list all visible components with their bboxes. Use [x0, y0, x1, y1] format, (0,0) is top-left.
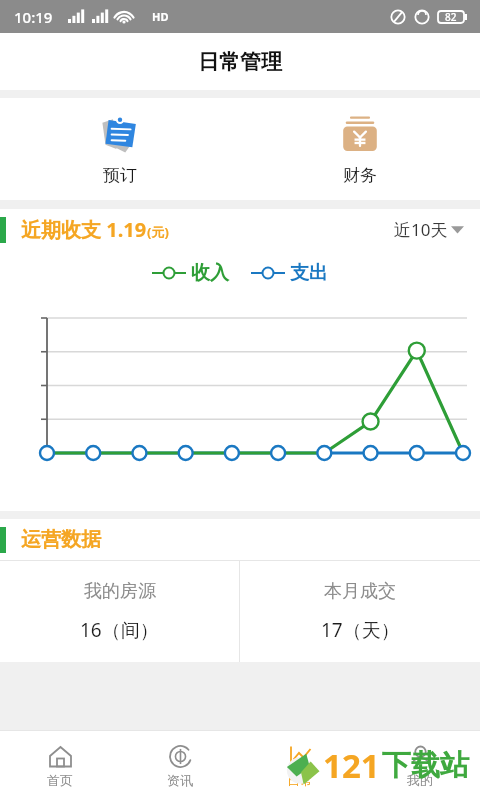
button[interactable]: 我的 [360, 730, 480, 800]
staticText: 日常管理 [198, 49, 282, 75]
staticText: (元) [147, 223, 169, 241]
button[interactable]: 预订 [0, 98, 240, 200]
button[interactable]: 收入 [152, 261, 229, 285]
staticText: 财务 [343, 165, 377, 186]
button[interactable]: 本月成交 [240, 561, 480, 662]
staticText: 收入 [191, 261, 229, 285]
other: 资讯 [168, 744, 193, 769]
staticText: 近期收支 1.19 [21, 216, 147, 243]
staticText: 我的 [407, 772, 433, 788]
staticText: 支出 [290, 261, 328, 285]
other: 我的 [408, 744, 433, 769]
button[interactable]: 资讯 [120, 730, 240, 800]
staticText: 82 [445, 10, 457, 24]
staticText: 近10天 [394, 218, 448, 241]
staticText: 运营数据 [21, 527, 101, 552]
staticText: 10:19 [14, 7, 53, 27]
staticText: 首页 [47, 772, 73, 788]
staticText: 日常 [287, 772, 313, 788]
staticText: 17（天） [321, 617, 400, 643]
staticText: 16（间） [80, 617, 159, 643]
staticText: 121 [323, 743, 380, 788]
button[interactable]: 财务 [240, 98, 480, 200]
staticText: HD [152, 9, 169, 24]
button[interactable]: 首页 [0, 730, 120, 800]
button[interactable]: 支出 [251, 261, 328, 285]
staticText: 我的房源 [84, 580, 156, 603]
staticText: 预订 [103, 165, 137, 186]
other: 日常 [288, 744, 313, 769]
staticText: 下载站 [382, 747, 469, 784]
staticText: 资讯 [167, 772, 193, 788]
button[interactable]: 我的房源 [0, 561, 239, 662]
button[interactable]: 日常 [240, 730, 360, 800]
button[interactable]: 近10天 [390, 214, 468, 245]
other: 首页 [48, 744, 73, 769]
staticText: 本月成交 [324, 580, 396, 603]
